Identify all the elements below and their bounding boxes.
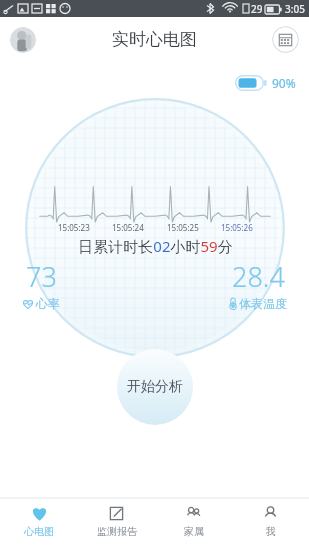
staticText: 15:05:25 (167, 222, 199, 233)
button[interactable]: 家属 (155, 498, 232, 550)
staticText: 监测报告 (97, 525, 137, 538)
staticText: 实时心电图 (112, 29, 197, 50)
staticText: 心电图 (24, 525, 54, 538)
staticText: 73 (26, 258, 57, 295)
button[interactable]: 心电图 (0, 498, 78, 550)
staticText: 开始分析 (127, 378, 183, 396)
staticText: 29 (251, 2, 263, 16)
staticText: 90% (272, 75, 296, 91)
button[interactable]: 我 (232, 498, 309, 550)
staticText: 28.4 (232, 258, 285, 295)
button[interactable]: Profile (10, 27, 36, 53)
staticText: 3:05 (285, 2, 305, 16)
button[interactable]: 监测报告 (78, 498, 155, 550)
staticText: 我 (266, 525, 276, 538)
staticText: 心率 (36, 296, 60, 311)
staticText: 体表温度 (239, 296, 287, 311)
button[interactable]: 开始分析 (117, 349, 193, 425)
staticText: 15:05:26 (221, 222, 253, 233)
staticText: 家属 (184, 525, 204, 538)
staticText: 15:05:23 (58, 222, 90, 233)
staticText: 日累计时长02小时59分 (78, 236, 233, 256)
button[interactable]: Calendar (272, 26, 299, 53)
staticText: 15:05:24 (112, 222, 144, 233)
